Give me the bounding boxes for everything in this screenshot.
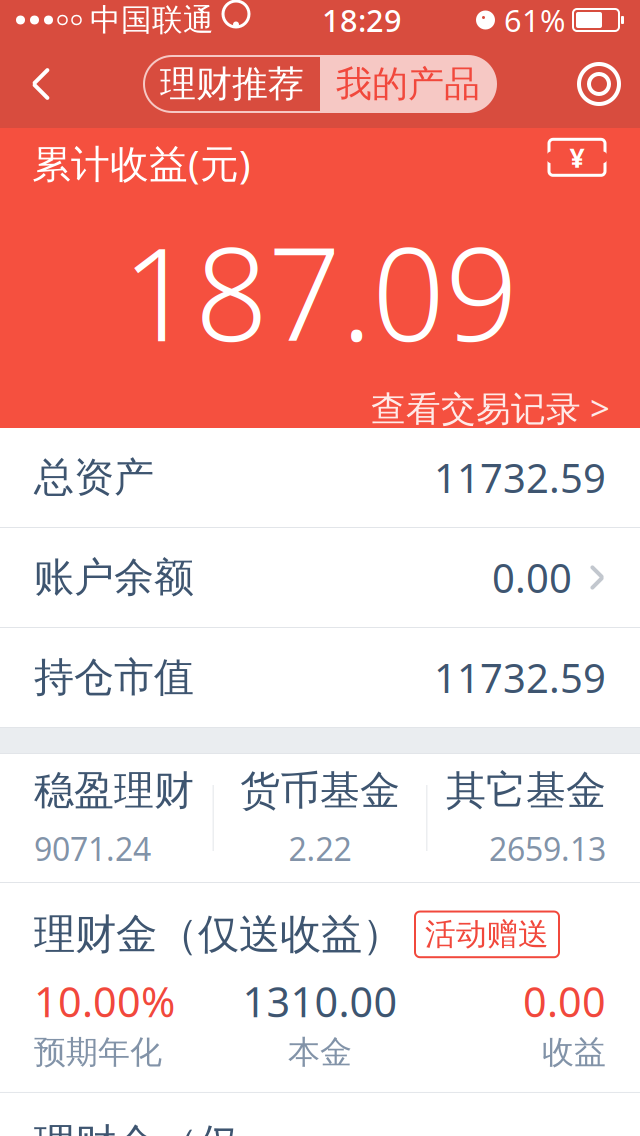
button[interactable]: 账户余额 (0, 528, 640, 628)
button[interactable]: 理财推荐 (144, 56, 320, 112)
staticText: 总资产 (34, 453, 154, 502)
button[interactable]: Settings (564, 44, 634, 124)
staticText: 预期年化 (34, 1033, 162, 1072)
staticText: 0.00 (523, 974, 606, 1029)
staticText: 10.00% (34, 974, 175, 1029)
staticText: 持仓市值 (34, 653, 194, 702)
button[interactable]: 理财金（仅送收益） (0, 883, 640, 1092)
staticText: 活动赠送 (425, 916, 549, 953)
staticText: 1310.00 (242, 974, 397, 1029)
staticText: 理财金（仅送收益） (34, 909, 403, 960)
staticText: ¥ (569, 140, 584, 175)
staticText: 0.00 (492, 551, 572, 604)
staticText: 2.22 (288, 827, 351, 870)
staticText: 查看交易记录 > (371, 385, 610, 431)
staticText: 我的产品 (336, 62, 480, 106)
staticText: 本金 (288, 1033, 352, 1072)
staticText: 11732.59 (434, 451, 606, 504)
staticText: 理财金（仅送收益） (34, 1119, 239, 1136)
staticText: 2659.13 (489, 827, 606, 870)
staticText: 收益 (542, 1033, 606, 1072)
staticText: 9071.24 (34, 827, 151, 870)
staticText: 货币基金 (240, 766, 400, 815)
staticText: 中国联通 (90, 1, 214, 39)
button[interactable]: 查看交易记录 > (371, 385, 640, 455)
button[interactable]: 总资产 (0, 428, 640, 528)
staticText: 其它基金 (446, 766, 606, 815)
staticText: 稳盈理财 (34, 766, 194, 815)
staticText: 账户余额 (34, 553, 194, 602)
button[interactable]: 理财金（仅送收益） (0, 1093, 640, 1136)
staticText: 18:29 (322, 0, 402, 40)
staticText: 理财推荐 (160, 62, 304, 106)
staticText: 61% (504, 0, 565, 40)
staticText: 187.09 (122, 207, 518, 377)
staticText: 11732.59 (434, 651, 606, 704)
staticText: 累计收益(元) (32, 137, 251, 189)
button[interactable]: Back (6, 44, 76, 124)
button[interactable]: 持仓市值 (0, 628, 640, 728)
button[interactable]: 我的产品 (320, 56, 496, 112)
